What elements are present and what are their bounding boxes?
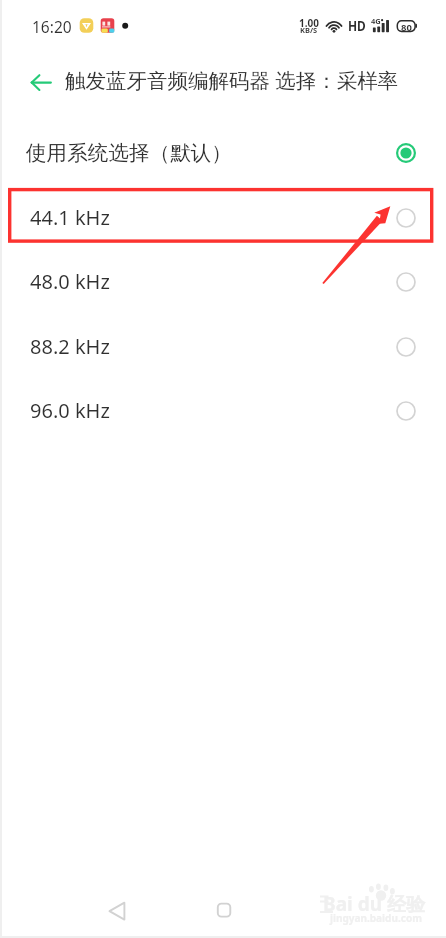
staticText: KB/S — [300, 25, 318, 35]
button[interactable]: 48.0 kHz — [0, 249, 446, 314]
staticText: 80 — [401, 21, 412, 34]
button[interactable]: 96.0 kHz — [0, 378, 446, 443]
button[interactable]: Back — [101, 902, 135, 928]
staticText: 48.0 kHz — [30, 268, 110, 295]
staticText: 4G — [371, 16, 381, 26]
button[interactable]: Home — [208, 902, 242, 928]
staticText: 96.0 kHz — [30, 397, 110, 424]
staticText: 触发蓝牙音频编解码器 选择：采样率 — [65, 66, 399, 94]
button[interactable]: Back — [19, 67, 53, 98]
staticText: 1.00 — [299, 16, 319, 30]
staticText: 88.2 kHz — [30, 333, 110, 360]
button[interactable]: 使用系统选择（默认） — [0, 120, 446, 185]
staticText: 使用系统选择（默认） — [26, 140, 232, 166]
staticText: jingyan.baidu.com — [330, 911, 422, 925]
staticText: 16:20 — [32, 16, 72, 37]
staticText: HD — [348, 16, 366, 35]
button[interactable]: 88.2 kHz — [0, 314, 446, 379]
staticText: 44.1 kHz — [30, 204, 110, 231]
staticText: Bai du 经验 — [323, 891, 425, 917]
button[interactable]: 44.1 kHz — [0, 185, 446, 250]
